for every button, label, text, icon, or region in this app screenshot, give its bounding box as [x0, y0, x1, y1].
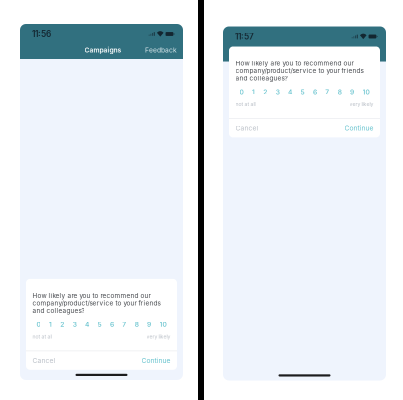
staticText: company/product/service to your friends — [32, 299, 160, 307]
button[interactable]: Continue — [344, 119, 373, 137]
staticText: Cancel — [235, 124, 258, 132]
staticText: and colleagues? — [32, 307, 84, 314]
staticText: How likely are you to recommend our — [32, 292, 150, 299]
staticText: 9 — [147, 320, 151, 328]
staticText: 7 — [325, 88, 329, 96]
staticText: 3 — [73, 320, 77, 328]
staticText: 4 — [85, 320, 89, 328]
staticText: Continue — [141, 356, 170, 365]
staticText: very likely — [349, 101, 373, 107]
staticText: Feedback — [145, 46, 177, 54]
staticText: not at all — [32, 333, 52, 340]
staticText: 2 — [60, 320, 64, 328]
staticText: 5 — [97, 320, 101, 328]
button[interactable]: Continue — [141, 351, 170, 370]
staticText: 3 — [276, 88, 280, 96]
staticText: company/product/service to your friends — [235, 67, 363, 75]
staticText: 1 — [49, 320, 52, 328]
staticText: 6 — [313, 88, 317, 96]
staticText: 11:56 — [32, 29, 51, 39]
staticText: not at all — [235, 101, 255, 107]
staticText: 0 — [239, 88, 243, 96]
button[interactable]: Cancel — [32, 351, 55, 370]
staticText: 9 — [350, 88, 354, 96]
staticText: 5 — [300, 88, 304, 96]
staticText: 0 — [36, 320, 40, 328]
button[interactable]: Cancel — [235, 119, 258, 137]
staticText: 10 — [362, 88, 369, 96]
staticText: 7 — [122, 320, 126, 328]
staticText: 8 — [135, 320, 139, 328]
staticText: 2 — [263, 88, 267, 96]
button[interactable]: Feedback — [145, 42, 177, 57]
staticText: 4 — [288, 88, 292, 96]
staticText: 11:57 — [235, 31, 254, 41]
staticText: Continue — [344, 124, 373, 132]
staticText: How likely are you to recommend our — [235, 59, 353, 67]
staticText: very likely — [146, 333, 170, 340]
staticText: Cancel — [32, 356, 55, 365]
staticText: and colleagues? — [235, 74, 287, 82]
staticText: 10 — [159, 320, 166, 328]
staticText: 6 — [110, 320, 114, 328]
staticText: 1 — [252, 88, 255, 96]
staticText: 8 — [338, 88, 342, 96]
staticText: Campaigns — [84, 46, 121, 54]
